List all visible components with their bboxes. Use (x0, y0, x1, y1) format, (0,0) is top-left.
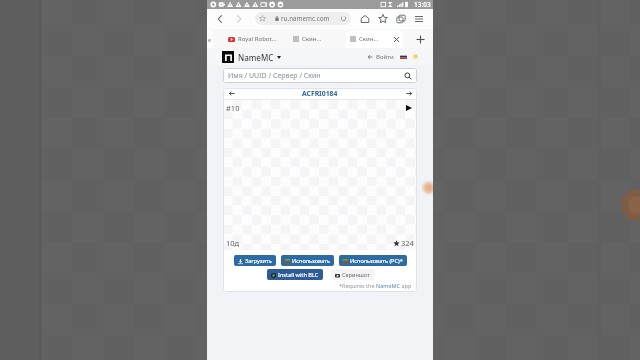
button[interactable]: Menu (411, 9, 427, 29)
staticText: NameMC (376, 282, 400, 289)
staticText: Имя / UUID / Сервер / Скин (228, 71, 321, 81)
button[interactable]: Скин... (289, 30, 332, 48)
staticText: 324 (401, 238, 414, 248)
button[interactable]: ACFRI0184 (302, 89, 338, 98)
button[interactable]: Previous skin (226, 88, 237, 99)
staticText: Загрузить (245, 257, 272, 265)
staticText: 13:03 (414, 0, 431, 9)
button[interactable]: Загрузить (234, 255, 276, 266)
staticText: #10 (226, 103, 240, 113)
staticText: Использовать (292, 257, 330, 265)
staticText: *Requires the (339, 282, 376, 289)
staticText: Royal Robot... (238, 35, 277, 43)
button[interactable]: NameMC (222, 51, 281, 63)
staticText: 10д (226, 238, 240, 248)
button[interactable]: ru.namemc.com (255, 12, 351, 25)
button[interactable]: Использовать (PC)* (339, 255, 407, 266)
button[interactable]: Back (212, 9, 228, 29)
button[interactable]: Скриншот (331, 269, 374, 280)
button[interactable]: Language (400, 54, 407, 59)
staticText: app (400, 282, 412, 289)
button[interactable]: Имя / UUID / Сервер / Скин (223, 68, 417, 83)
staticText: NameMC (238, 52, 274, 63)
staticText: Скриншот (342, 271, 370, 279)
staticText: Скин... (302, 35, 322, 43)
staticText: ru.namemc.com (281, 14, 330, 23)
staticText: e (208, 36, 212, 43)
button[interactable]: New tab (411, 30, 429, 48)
button[interactable]: Войти (368, 53, 394, 61)
button[interactable]: Play animation (403, 102, 414, 113)
button[interactable]: Скин... (346, 30, 403, 48)
button[interactable]: Theme (412, 53, 419, 60)
button[interactable]: Next skin (403, 88, 414, 99)
staticText: Скин... (359, 35, 379, 43)
staticText: Install with BLC (278, 271, 319, 279)
button[interactable]: Bookmark (375, 9, 391, 29)
button[interactable]: Forward (231, 9, 247, 29)
button[interactable]: Install with BLC (267, 269, 323, 280)
button[interactable]: Tabs (393, 9, 409, 29)
button[interactable]: Home (357, 9, 373, 29)
staticText: Войти (376, 53, 394, 61)
button[interactable]: Close tab (391, 34, 401, 44)
button[interactable]: Previous tab (207, 30, 213, 48)
button[interactable]: Использовать (281, 255, 334, 266)
button[interactable]: Royal Robot... (224, 30, 282, 48)
staticText: Использовать (PC)* (350, 257, 403, 265)
